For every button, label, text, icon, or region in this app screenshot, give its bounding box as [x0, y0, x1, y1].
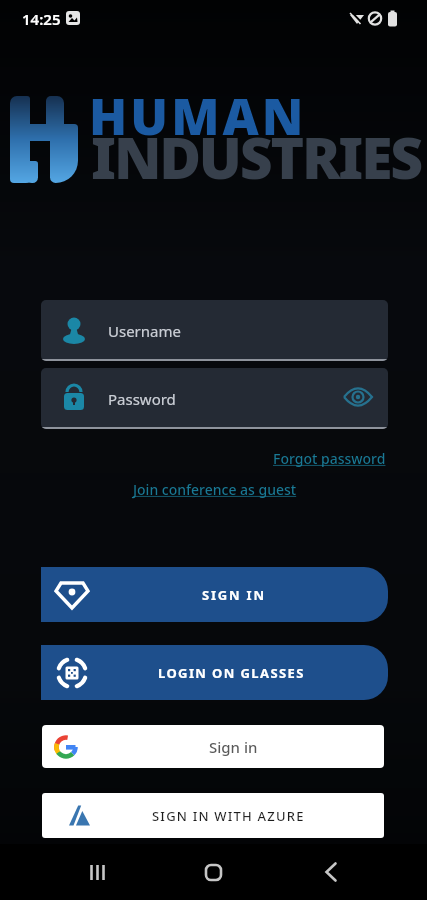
staticText: Password: [108, 389, 176, 409]
button[interactable]: Username: [41, 300, 388, 361]
staticText: SIGN IN WITH AZURE: [152, 807, 305, 825]
staticText: Username: [108, 321, 181, 341]
staticText: Forgot password: [273, 449, 386, 468]
button[interactable]: [193, 856, 233, 888]
staticText: 14:25: [22, 9, 61, 29]
button[interactable]: SIGN IN: [41, 567, 388, 622]
staticText: SIGN IN: [202, 586, 266, 604]
staticText: HUMAN: [89, 82, 307, 150]
button[interactable]: SIGN IN WITH AZURE: [42, 793, 384, 838]
staticText: INDUSTRIES: [91, 118, 422, 196]
button[interactable]: Forgot password: [273, 449, 386, 468]
button[interactable]: Password: [41, 368, 388, 429]
staticText: Sign in: [209, 737, 258, 757]
staticText: Join conference as guest: [133, 480, 297, 499]
staticText: LOGIN ON GLASSES: [158, 664, 305, 682]
button[interactable]: Join conference as guest: [133, 480, 297, 499]
button[interactable]: [311, 856, 351, 888]
button[interactable]: LOGIN ON GLASSES: [41, 645, 388, 700]
button[interactable]: [78, 856, 118, 888]
button[interactable]: Sign in: [42, 725, 384, 768]
